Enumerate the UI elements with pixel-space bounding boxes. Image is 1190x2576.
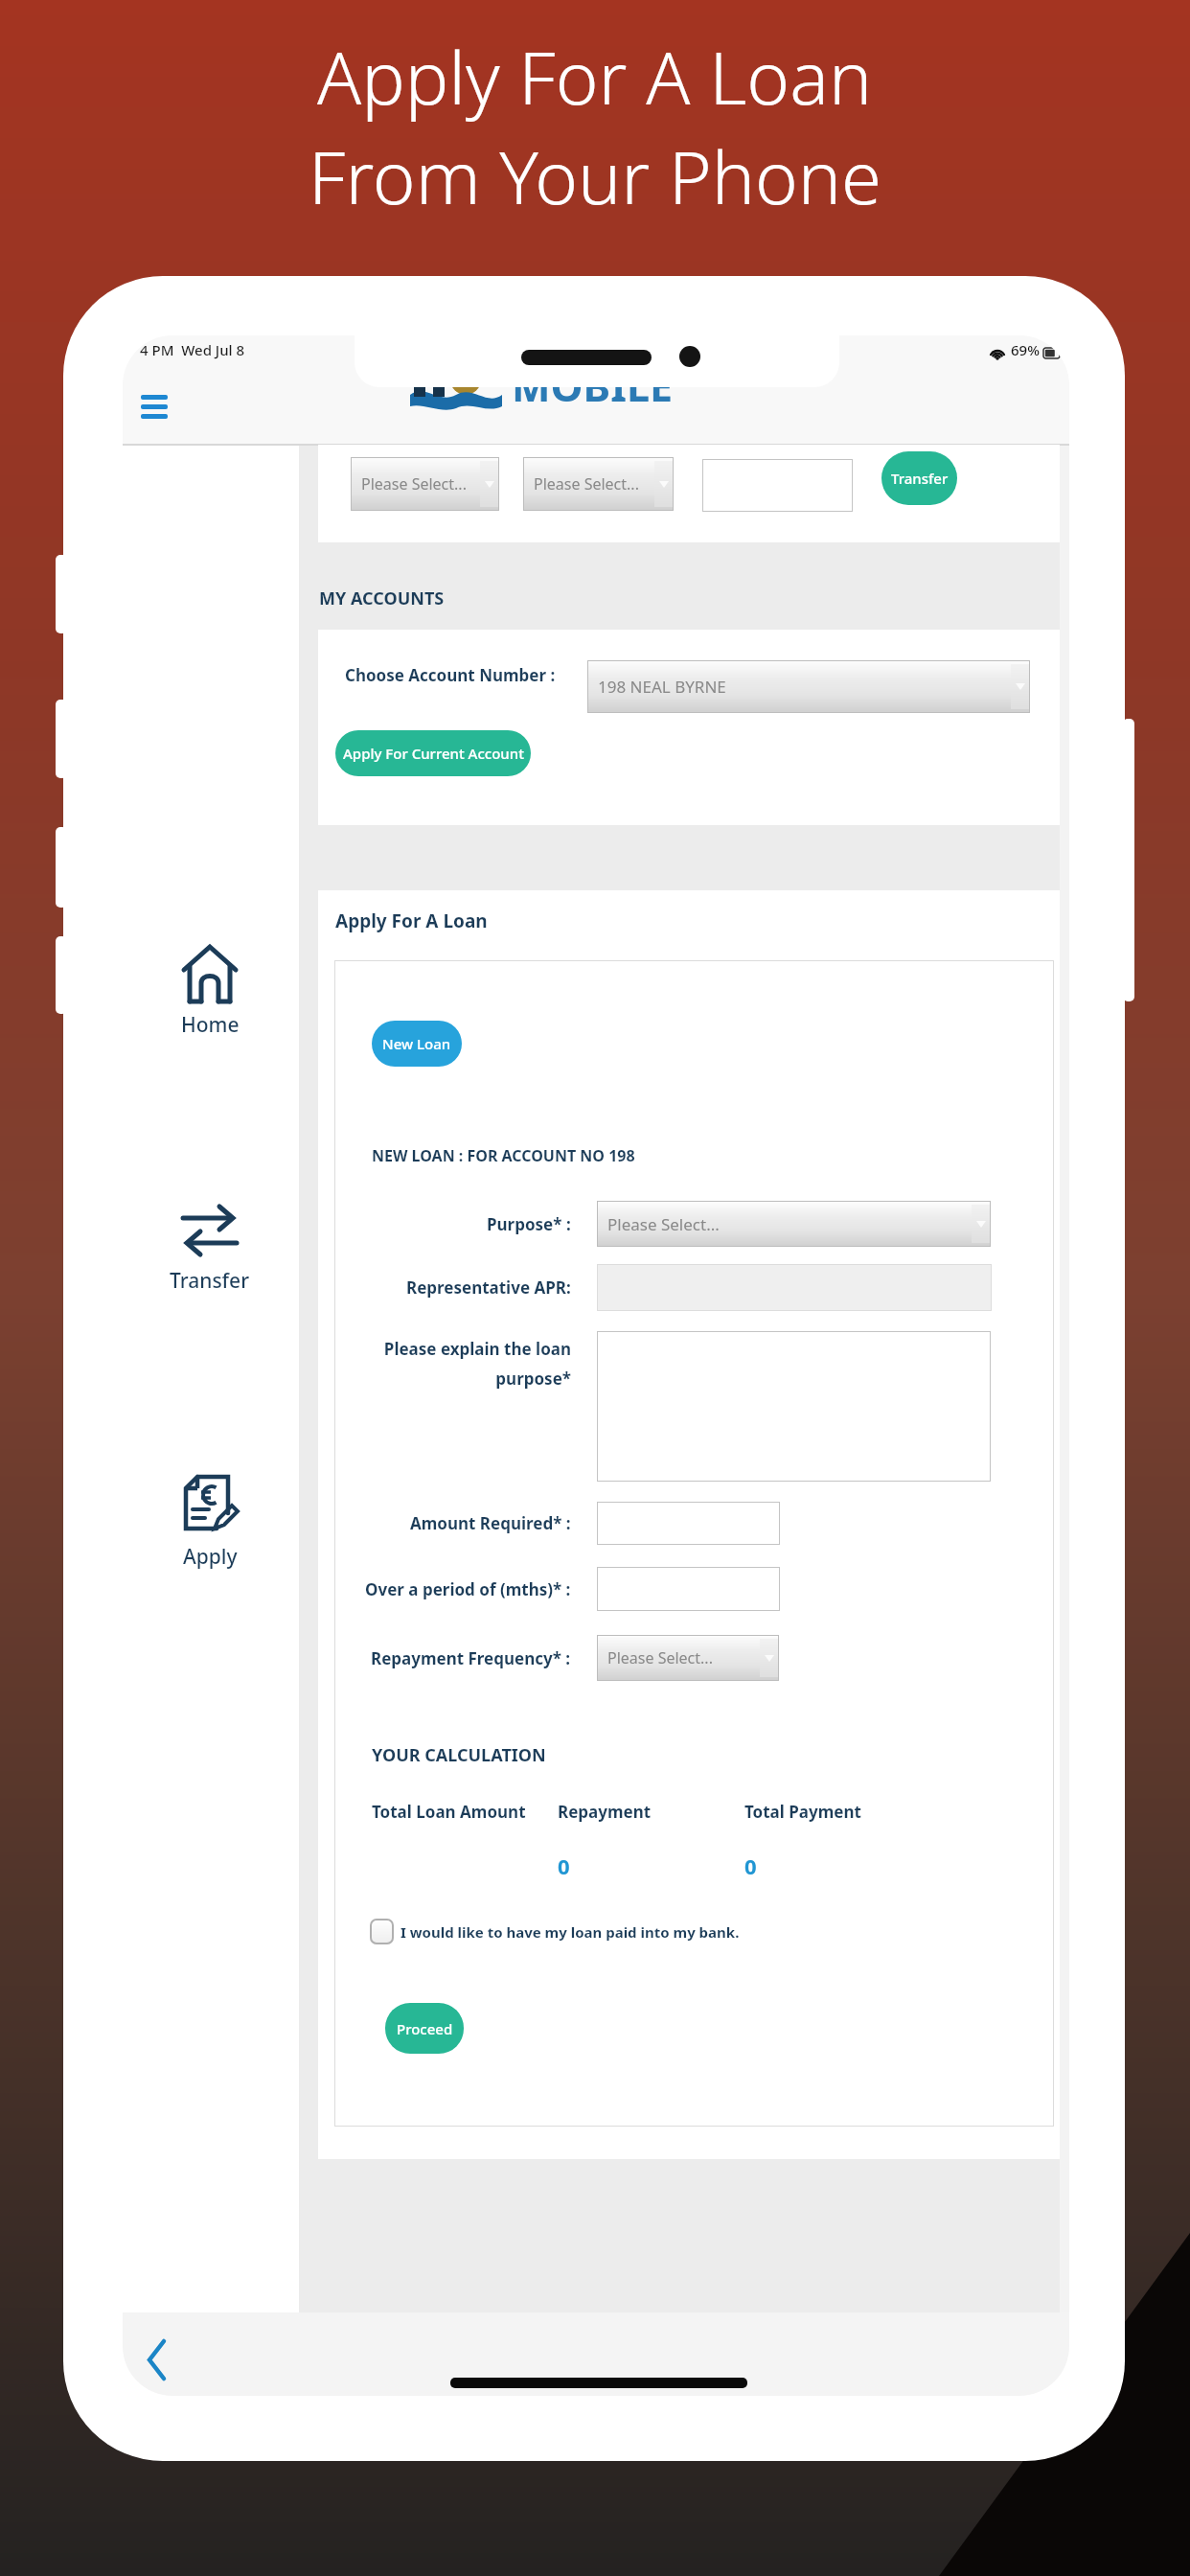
staticText: Total Loan Amount	[372, 1801, 526, 1823]
staticText: Purpose* :	[487, 1213, 571, 1235]
button[interactable]: 198 NEAL BYRNE	[587, 660, 1030, 713]
button[interactable]: I would like to have my loan paid into m…	[370, 1919, 740, 1944]
button[interactable]	[150, 942, 269, 1040]
staticText: 198 NEAL BYRNE	[598, 676, 726, 698]
staticText: Apply For A Loan	[335, 908, 488, 933]
button[interactable]	[150, 1473, 269, 1572]
staticText: NEW LOAN : FOR ACCOUNT NO 198	[372, 1145, 635, 1166]
staticText: Transfer	[891, 469, 949, 488]
staticText: Repayment Frequency* :	[371, 1647, 571, 1669]
staticText: Home	[181, 1011, 240, 1039]
staticText: Proceed	[397, 2019, 453, 2038]
button[interactable]: Please Select...	[523, 457, 674, 511]
button[interactable]: Please Select...	[597, 1635, 779, 1681]
button[interactable]: New Loan	[372, 1021, 462, 1067]
button[interactable]: Please Select...	[597, 1201, 991, 1247]
staticText: Repayment	[558, 1801, 652, 1823]
staticText: From Your Phone	[309, 126, 881, 226]
button[interactable]: Transfer	[881, 451, 957, 505]
staticText: Total Payment	[744, 1801, 861, 1823]
staticText: Amount Required* :	[410, 1512, 571, 1534]
staticText: 0	[558, 1851, 570, 1880]
staticText: Apply For Current Account	[343, 744, 524, 763]
button[interactable]	[597, 1502, 780, 1545]
staticText: Please explain the loan purpose*	[383, 1338, 571, 1390]
button[interactable]	[146, 2338, 167, 2381]
staticText: Representative APR:	[406, 1276, 571, 1299]
staticText: MY ACCOUNTS	[319, 586, 445, 610]
button[interactable]	[150, 1198, 269, 1296]
staticText: YOUR CALCULATION	[372, 1743, 546, 1767]
staticText: I would like to have my loan paid into m…	[400, 1922, 740, 1942]
staticText: 4 PM Wed Jul 8	[140, 340, 245, 359]
staticText: Over a period of (mths)* :	[365, 1578, 571, 1600]
staticText: 69%	[1011, 340, 1040, 359]
staticText: New Loan	[382, 1034, 451, 1053]
button[interactable]	[702, 459, 853, 512]
staticText: 0	[744, 1851, 757, 1880]
staticText: MOBILE	[512, 357, 674, 414]
staticText: Choose Account Number :	[345, 664, 556, 686]
button[interactable]	[141, 395, 168, 419]
button[interactable]: Apply For Current Account	[335, 730, 531, 776]
button[interactable]	[597, 1264, 992, 1311]
button[interactable]	[597, 1567, 780, 1611]
staticText: Please Select...	[607, 1647, 713, 1668]
staticText: Apply	[183, 1543, 238, 1571]
staticText: Transfer	[170, 1267, 250, 1295]
staticText: Please Select...	[361, 473, 467, 494]
button[interactable]	[597, 1331, 991, 1482]
button[interactable]: Please Select...	[351, 457, 499, 511]
staticText: Apply For A Loan	[317, 27, 873, 126]
staticText: Please Select...	[607, 1213, 720, 1235]
button[interactable]: Proceed	[385, 2003, 464, 2054]
staticText: Please Select...	[534, 473, 639, 494]
